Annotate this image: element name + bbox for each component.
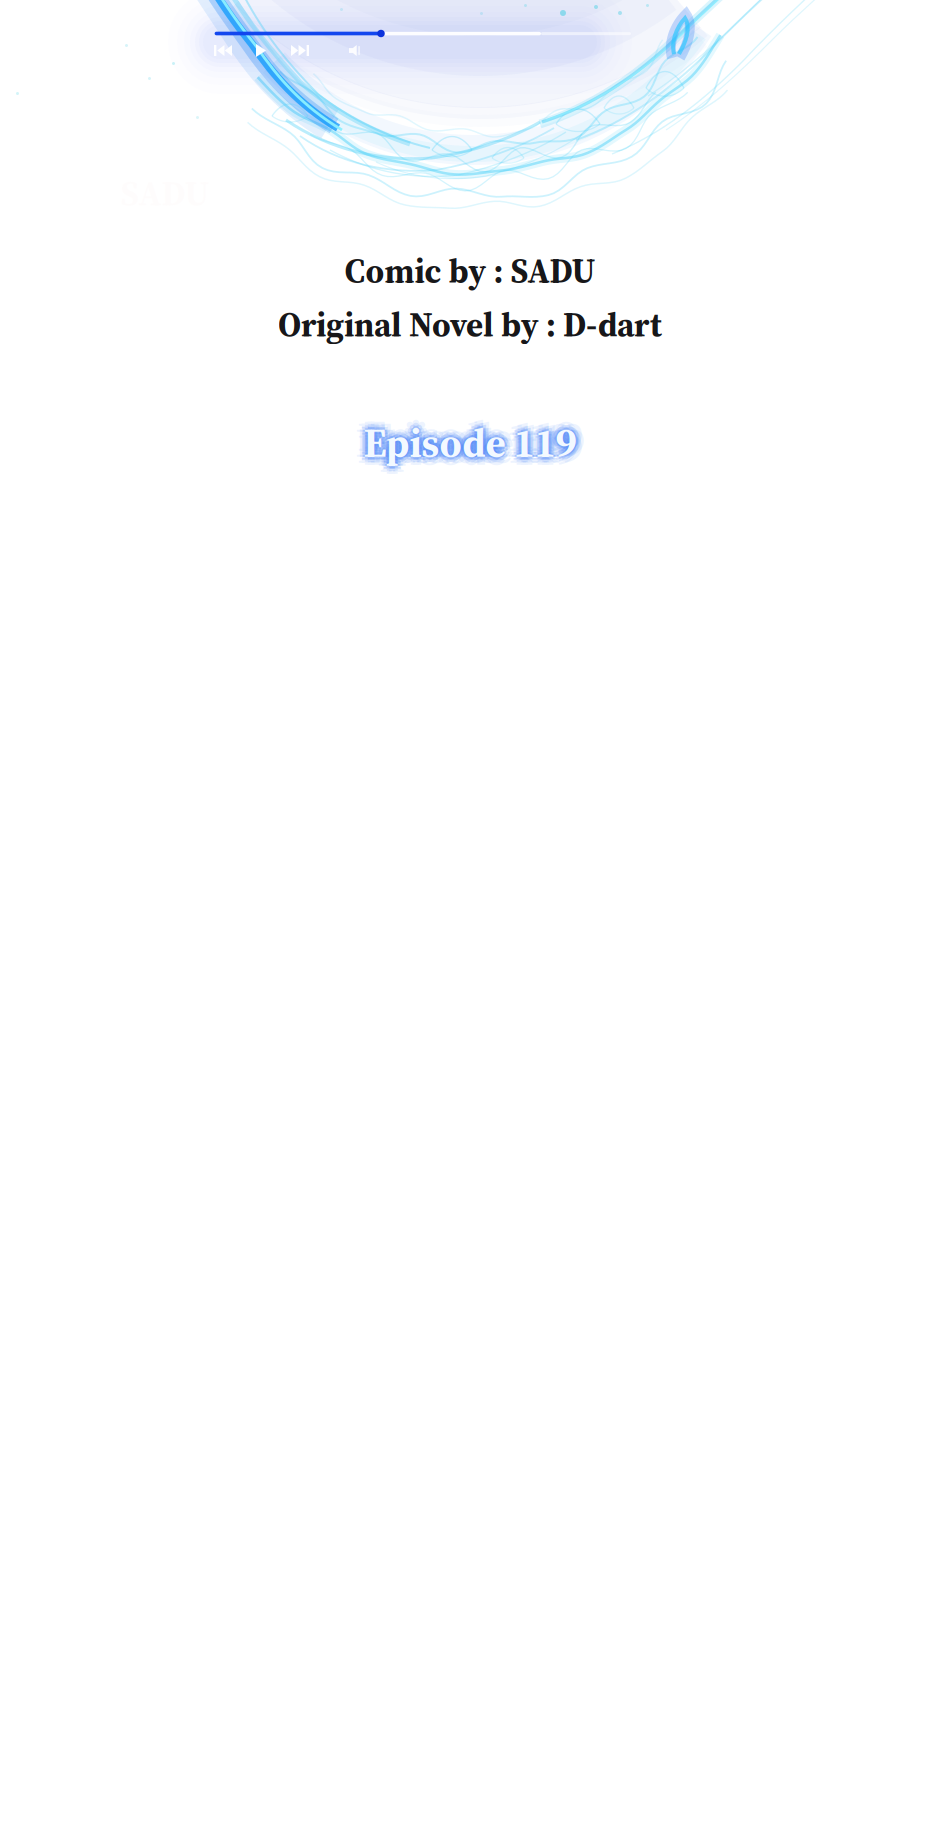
staticText: Episode 119 (358, 415, 571, 470)
staticText: Episode 119 (360, 418, 573, 473)
staticText: Episode 119 (369, 421, 582, 476)
staticText: Episode 119 (365, 415, 578, 470)
staticText: Episode 119 (366, 418, 579, 473)
staticText: Episode 119 (363, 413, 576, 468)
staticText: Episode 119 (357, 409, 570, 464)
staticText: Episode 119 (371, 415, 584, 470)
staticText: Original Novel by : D-dart (278, 302, 662, 347)
staticText: Episode 119 (363, 410, 576, 465)
staticText: Episode 119 (366, 412, 579, 467)
staticText: Episode 119 (355, 415, 568, 470)
staticText: Episode 119 (368, 415, 581, 470)
staticText: Episode 119 (360, 412, 573, 467)
button[interactable]: Next track (285, 39, 315, 62)
staticText: Comic by : SADU (344, 248, 595, 294)
staticText: Episode 119 (363, 423, 576, 478)
button[interactable]: Volume (343, 39, 366, 62)
button[interactable]: Previous track (208, 39, 238, 62)
staticText: Episode 119 (363, 417, 576, 472)
staticText: Episode 119 (363, 415, 576, 470)
staticText: Episode 119 (363, 407, 576, 462)
staticText: Episode 119 (369, 409, 582, 464)
staticText: Episode 119 (357, 421, 570, 476)
button[interactable]: Play (250, 38, 272, 63)
staticText: Episode 119 (363, 420, 576, 475)
staticText: Episode 119 (361, 415, 574, 470)
